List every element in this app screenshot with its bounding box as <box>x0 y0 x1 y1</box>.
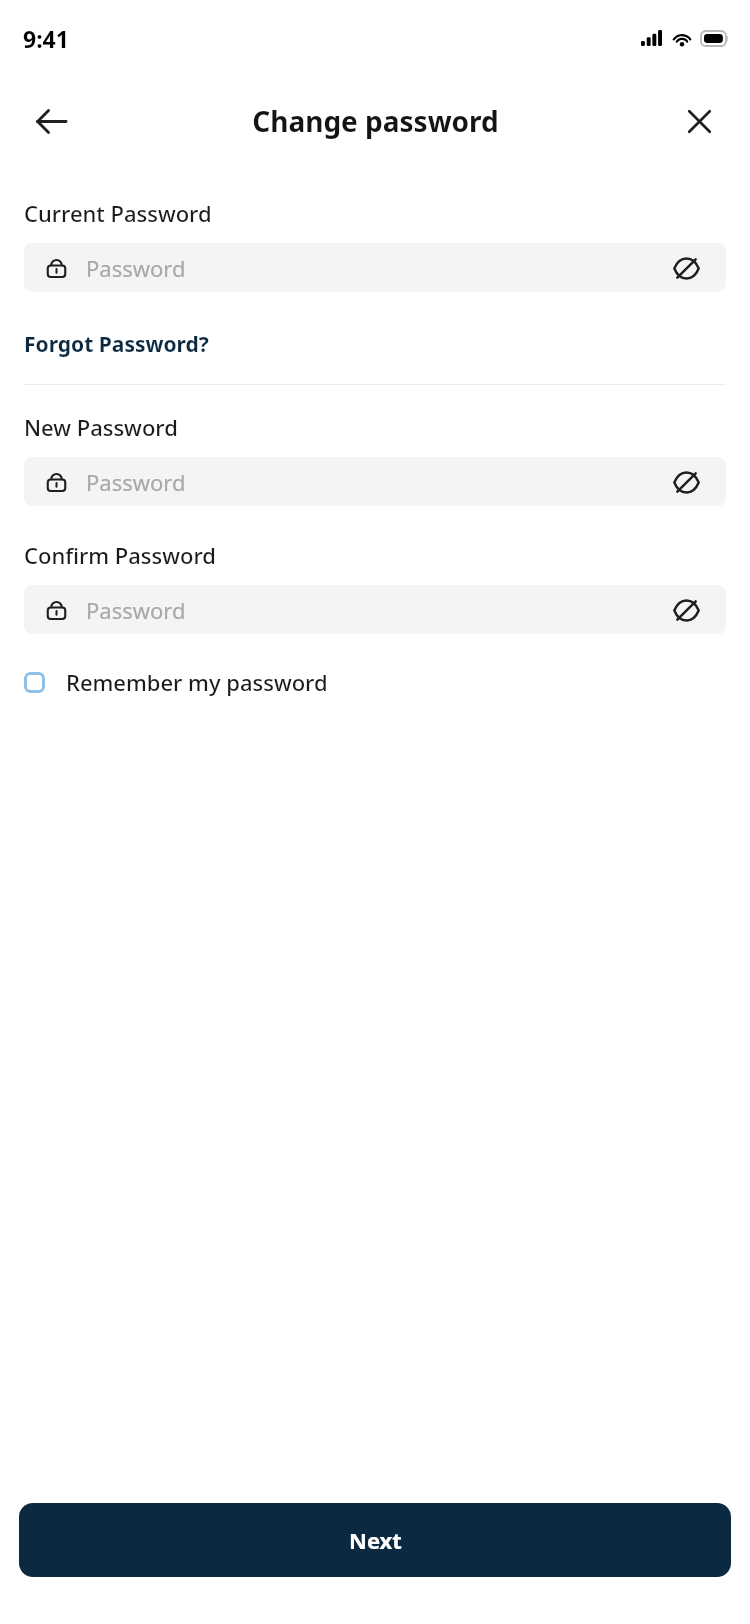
staticText: Password <box>86 595 186 625</box>
staticText: Confirm Password <box>24 540 216 570</box>
button[interactable]: Password <box>24 585 726 634</box>
button[interactable]: Back <box>23 93 79 149</box>
button[interactable]: Remember my password <box>24 663 328 701</box>
staticText: Password <box>86 467 186 497</box>
staticText: Current Password <box>24 198 212 228</box>
button[interactable]: Forgot Password? <box>24 328 209 361</box>
staticText: Forgot Password? <box>24 330 209 359</box>
button[interactable]: Password <box>24 243 726 292</box>
button[interactable]: Next <box>19 1503 731 1577</box>
button[interactable]: Close <box>671 93 727 149</box>
staticText: Change password <box>252 102 499 140</box>
staticText: New Password <box>24 412 178 442</box>
button[interactable]: Show password <box>666 462 706 502</box>
button[interactable]: Show password <box>666 248 706 288</box>
staticText: Remember my password <box>66 667 328 697</box>
button[interactable]: Show password <box>666 590 706 630</box>
button[interactable]: Password <box>24 457 726 506</box>
staticText: Next <box>349 1525 402 1555</box>
staticText: Password <box>86 253 186 283</box>
staticText: 9:41 <box>23 23 69 54</box>
